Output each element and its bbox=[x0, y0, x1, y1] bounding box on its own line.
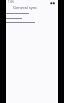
staticText: General sync bbox=[13, 5, 38, 10]
staticText: 1:06 bbox=[8, 0, 14, 4]
staticText: ●● bbox=[50, 1, 56, 4]
